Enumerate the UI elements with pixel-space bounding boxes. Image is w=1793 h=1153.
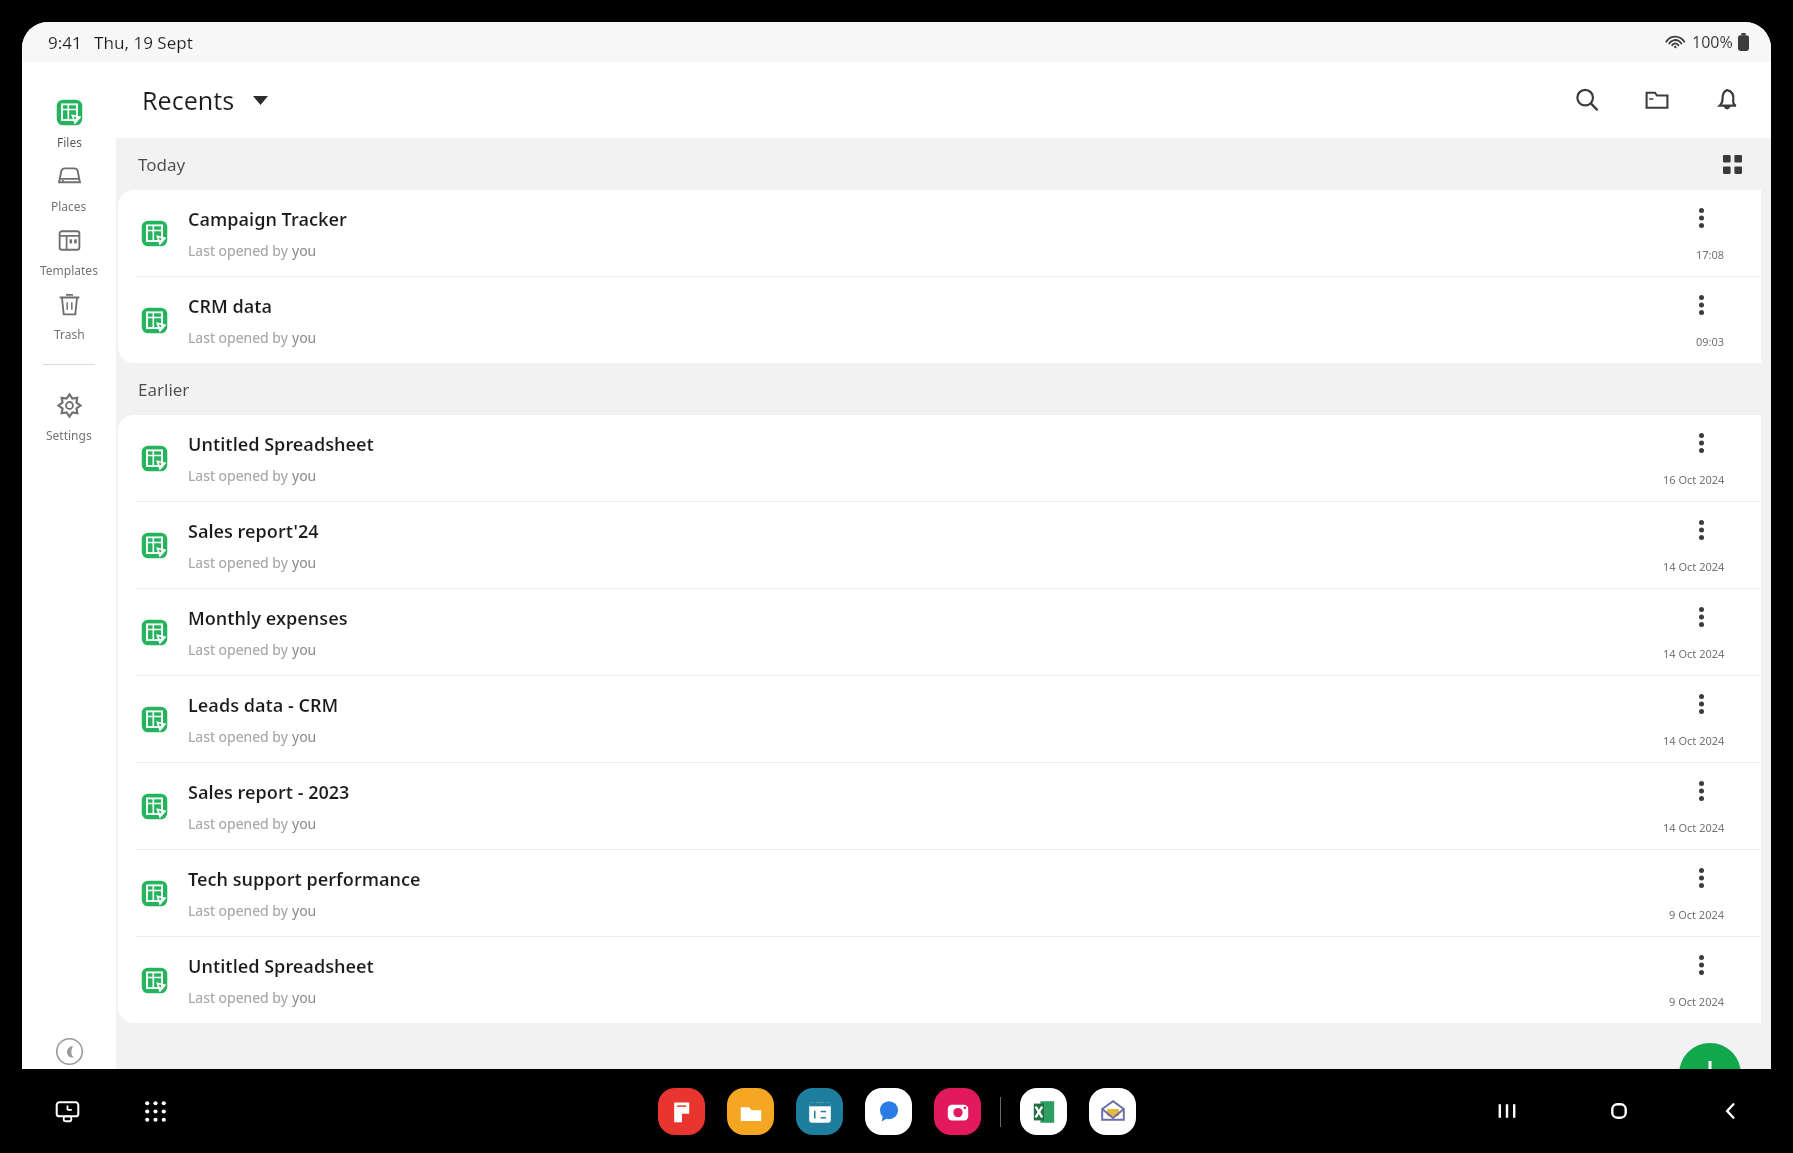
- button[interactable]: Create new spreadsheet: [1679, 1043, 1741, 1105]
- button[interactable]: More options: [1683, 947, 1719, 983]
- staticText: 16 Oct 2024: [1663, 472, 1725, 487]
- staticText: Recents: [142, 83, 235, 117]
- button[interactable]: Sales report'24: [118, 502, 1761, 588]
- button[interactable]: Grid view: [1713, 145, 1751, 183]
- button[interactable]: Messages: [865, 1088, 912, 1135]
- button[interactable]: Search: [1567, 80, 1607, 120]
- staticText: Templates: [40, 262, 98, 278]
- staticText: Monthly expenses: [188, 606, 348, 631]
- button[interactable]: Recents: [130, 77, 280, 123]
- staticText: you: [292, 901, 317, 920]
- staticText: Untitled Spreadsheet: [188, 432, 374, 457]
- staticText: Sales report'24: [188, 519, 319, 544]
- button[interactable]: Folders: [1637, 80, 1677, 120]
- staticText: 9 Oct 2024: [1669, 994, 1725, 1009]
- button[interactable]: Monthly expenses: [118, 589, 1761, 675]
- staticText: 9:41: [48, 31, 82, 54]
- staticText: you: [292, 727, 317, 746]
- staticText: Last opened by: [188, 640, 292, 659]
- staticText: Tech support performance: [188, 867, 421, 892]
- staticText: Last opened by: [188, 241, 292, 260]
- button[interactable]: Back: [1709, 1089, 1753, 1133]
- staticText: Last opened by: [188, 727, 292, 746]
- button[interactable]: All apps: [132, 1088, 178, 1134]
- staticText: Thu, 19 Sept: [94, 31, 193, 54]
- staticText: 17:08: [1696, 247, 1725, 262]
- button[interactable]: Leads data - CRM: [118, 676, 1761, 762]
- staticText: 100%: [1692, 31, 1733, 53]
- button[interactable]: Trash: [22, 284, 116, 348]
- button[interactable]: CRM data: [118, 277, 1761, 363]
- staticText: Campaign Tracker: [188, 207, 347, 232]
- button[interactable]: More options: [1683, 425, 1719, 461]
- staticText: Last opened by: [188, 901, 292, 920]
- button[interactable]: More options: [1683, 860, 1719, 896]
- button[interactable]: Settings: [22, 385, 116, 449]
- button[interactable]: Untitled Spreadsheet: [118, 937, 1761, 1023]
- staticText: you: [292, 814, 317, 833]
- button[interactable]: Dark Mode: [22, 1031, 116, 1125]
- button[interactable]: Sales report - 2023: [118, 763, 1761, 849]
- staticText: 14 Oct 2024: [1663, 646, 1725, 661]
- button[interactable]: More options: [1683, 287, 1719, 323]
- staticText: Last opened by: [188, 553, 292, 572]
- button[interactable]: Files: [22, 92, 116, 156]
- button[interactable]: More options: [1683, 686, 1719, 722]
- button[interactable]: Recent apps: [1485, 1089, 1529, 1133]
- staticText: Last opened by: [188, 988, 292, 1007]
- staticText: Places: [51, 198, 87, 214]
- button[interactable]: Camera: [934, 1088, 981, 1135]
- staticText: you: [292, 328, 317, 347]
- staticText: Today: [138, 153, 186, 176]
- staticText: Trash: [54, 326, 85, 342]
- staticText: you: [292, 640, 317, 659]
- staticText: 14 Oct 2024: [1663, 820, 1725, 835]
- button[interactable]: Untitled Spreadsheet: [118, 415, 1761, 501]
- staticText: you: [292, 466, 317, 485]
- button[interactable]: Places: [22, 156, 116, 220]
- button[interactable]: Notifications: [1707, 80, 1747, 120]
- button[interactable]: Tech support performance: [118, 850, 1761, 936]
- staticText: you: [292, 988, 317, 1007]
- button[interactable]: Campaign Tracker: [118, 190, 1761, 276]
- staticText: 14 Oct 2024: [1663, 733, 1725, 748]
- button[interactable]: More options: [1683, 599, 1719, 635]
- button[interactable]: More options: [1683, 512, 1719, 548]
- button[interactable]: Mail: [1089, 1088, 1136, 1135]
- button[interactable]: More options: [1683, 200, 1719, 236]
- staticText: CRM data: [188, 294, 273, 319]
- button[interactable]: Office: [658, 1088, 705, 1135]
- staticText: 09:03: [1696, 334, 1725, 349]
- staticText: Settings: [46, 427, 92, 443]
- button[interactable]: Calendar: [796, 1088, 843, 1135]
- staticText: Files: [57, 134, 82, 150]
- button[interactable]: My Files: [727, 1088, 774, 1135]
- staticText: Last opened by: [188, 466, 292, 485]
- staticText: Leads data - CRM: [188, 693, 339, 718]
- button[interactable]: Recent apps: [44, 1088, 90, 1134]
- button[interactable]: Home: [1597, 1089, 1641, 1133]
- staticText: Sales report - 2023: [188, 780, 350, 805]
- staticText: Last opened by: [188, 814, 292, 833]
- staticText: you: [292, 553, 317, 572]
- staticText: 14 Oct 2024: [1663, 559, 1725, 574]
- button[interactable]: Excel: [1020, 1088, 1067, 1135]
- staticText: 9 Oct 2024: [1669, 907, 1725, 922]
- staticText: Earlier: [138, 378, 190, 401]
- button[interactable]: More options: [1683, 773, 1719, 809]
- staticText: Last opened by: [188, 328, 292, 347]
- staticText: you: [292, 241, 317, 260]
- staticText: Untitled Spreadsheet: [188, 954, 374, 979]
- button[interactable]: Templates: [22, 220, 116, 284]
